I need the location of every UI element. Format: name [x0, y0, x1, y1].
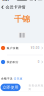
staticText: 千锦: [14, 14, 30, 24]
button[interactable]: 立即使用: [0, 84, 20, 91]
staticText: 查看使用规则: [29, 84, 44, 91]
button[interactable]: 我的积分: [0, 55, 44, 69]
staticText: 会员卡详情: [5, 5, 25, 10]
staticText: ¥0.00: [31, 46, 40, 50]
staticText: 9:41: [2, 0, 9, 2]
staticText: 立即使用: [2, 85, 18, 90]
button[interactable]: 账户余额: [0, 41, 44, 55]
button[interactable]: Back: [0, 4, 4, 11]
staticText: 0: [38, 60, 40, 64]
button[interactable]: 去充值: [14, 77, 23, 80]
staticText: 余额不足: [1, 77, 13, 80]
staticText: 我的积分: [7, 60, 19, 64]
staticText: 去充值: [14, 77, 23, 80]
staticText: 账户余额: [7, 46, 19, 50]
